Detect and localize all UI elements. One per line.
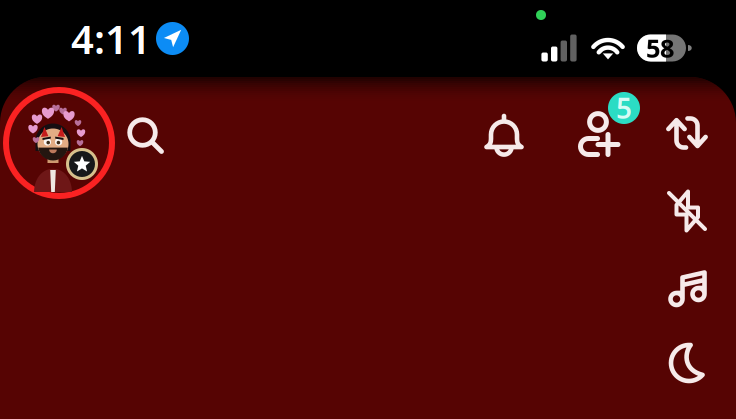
button[interactable]: Search <box>118 108 174 164</box>
staticText: 5 <box>616 89 632 127</box>
button[interactable]: Night mode <box>662 336 716 390</box>
staticText: 58 <box>646 31 674 65</box>
staticText: 4:11 <box>71 12 151 65</box>
button[interactable]: Notifications <box>477 109 531 163</box>
button[interactable]: Profile <box>6 90 112 196</box>
button[interactable]: Add friends <box>565 106 621 162</box>
button[interactable]: Flip camera <box>660 106 714 160</box>
button[interactable]: Add music <box>662 264 716 318</box>
button[interactable]: Flash off <box>660 184 714 238</box>
